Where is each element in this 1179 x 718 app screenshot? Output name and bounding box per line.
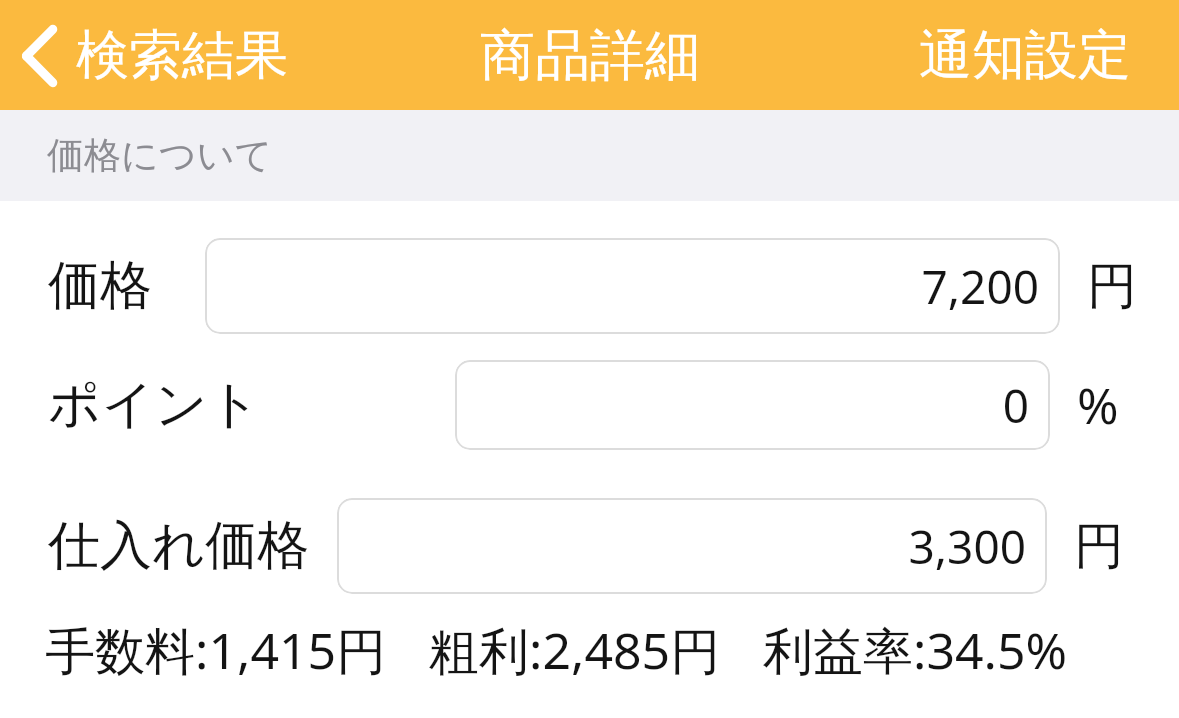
- staticText: 3,300: [908, 515, 1026, 578]
- staticText: 円: [1074, 515, 1124, 578]
- staticText: 7,200: [921, 255, 1039, 318]
- staticText: 価格について: [47, 132, 273, 179]
- staticText: 0: [1002, 374, 1029, 437]
- staticText: %: [1077, 371, 1119, 439]
- button[interactable]: 7,200: [205, 238, 1060, 334]
- staticText: 価格: [48, 253, 152, 319]
- staticText: 仕入れ価格: [48, 513, 310, 579]
- staticText: 手数料:1,415円: [45, 616, 387, 684]
- staticText: 粗利:2,485円: [429, 616, 721, 684]
- button[interactable]: 3,300: [337, 498, 1047, 594]
- staticText: ポイント: [48, 372, 261, 438]
- staticText: 検索結果: [76, 22, 288, 89]
- staticText: 通知設定: [919, 22, 1131, 89]
- staticText: 利益率:34.5%: [763, 616, 1068, 684]
- button[interactable]: 0: [455, 360, 1050, 450]
- staticText: 商品詳細: [480, 21, 700, 90]
- staticText: 円: [1087, 255, 1137, 318]
- button[interactable]: 検索結果: [0, 8, 304, 103]
- button[interactable]: 通知設定: [895, 8, 1179, 103]
